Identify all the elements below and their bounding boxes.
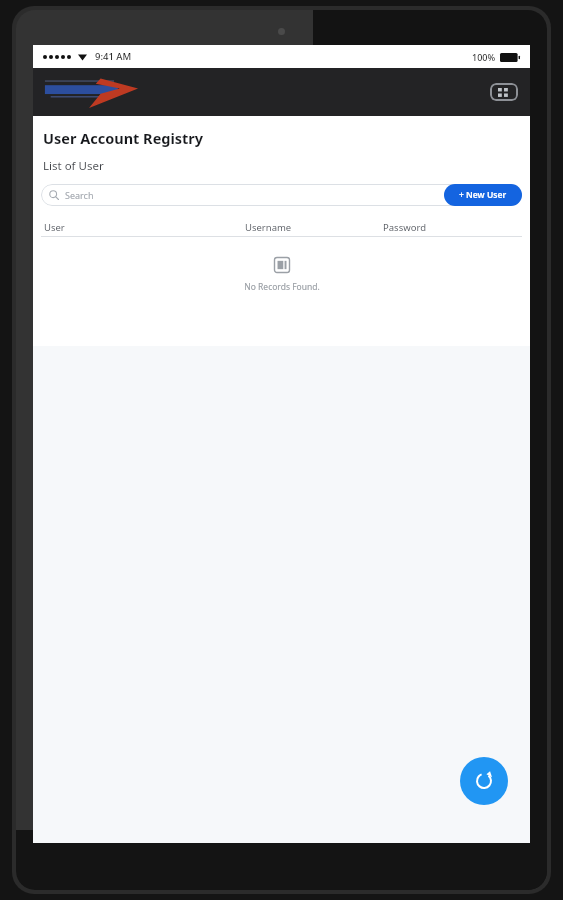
button[interactable]: Refresh: [460, 757, 508, 805]
staticText: Search: [65, 189, 94, 201]
staticText: User Account Registry: [43, 128, 204, 148]
staticText: No Records Found.: [244, 281, 320, 293]
staticText: User: [44, 221, 65, 234]
staticText: 9:41 AM: [95, 50, 132, 63]
staticText: List of User: [43, 158, 104, 174]
staticText: 100%: [472, 51, 496, 63]
button[interactable]: + New User: [444, 184, 522, 206]
button[interactable]: Airworks home: [43, 75, 139, 109]
button[interactable]: Menu: [490, 83, 518, 101]
staticText: Password: [383, 221, 426, 234]
staticText: Username: [245, 221, 292, 234]
staticText: + New User: [459, 189, 507, 201]
button[interactable]: Search: [41, 184, 522, 206]
